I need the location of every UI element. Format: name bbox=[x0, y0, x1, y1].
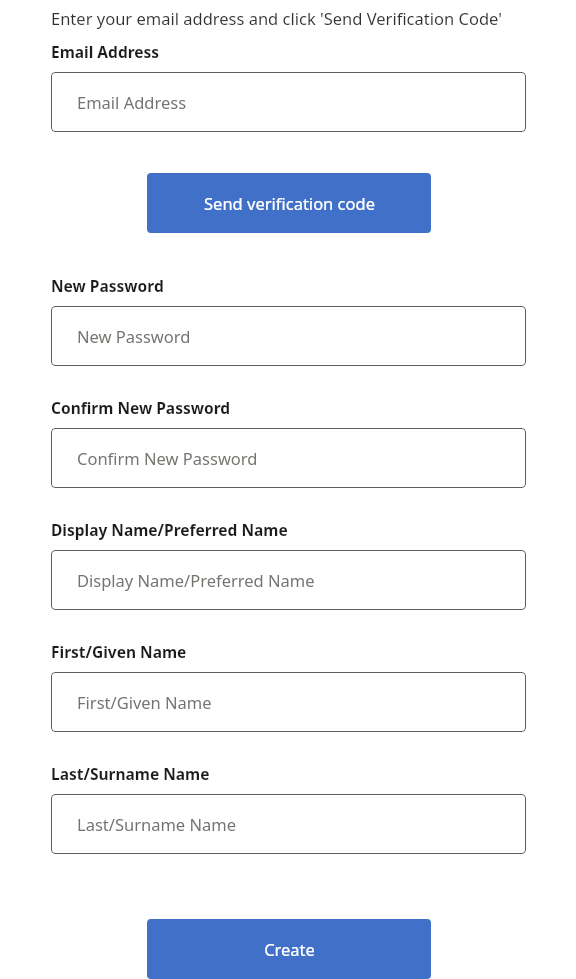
staticText: Last/Surname Name bbox=[51, 763, 210, 784]
button[interactable]: Display Name/Preferred Name bbox=[51, 550, 526, 610]
staticText: Email Address bbox=[77, 91, 187, 113]
button[interactable]: Create bbox=[147, 919, 431, 979]
button[interactable]: First/Given Name bbox=[51, 672, 526, 732]
button[interactable]: Confirm New Password bbox=[51, 428, 526, 488]
staticText: Display Name/Preferred Name bbox=[77, 569, 315, 591]
button[interactable]: New Password bbox=[51, 306, 526, 366]
staticText: Confirm New Password bbox=[51, 397, 231, 418]
staticText: Last/Surname Name bbox=[77, 813, 236, 835]
button[interactable]: Email Address bbox=[51, 72, 526, 132]
staticText: Confirm New Password bbox=[77, 447, 258, 469]
staticText: Email Address bbox=[51, 41, 160, 62]
staticText: Send verification code bbox=[204, 192, 375, 214]
staticText: New Password bbox=[51, 275, 164, 296]
staticText: Display Name/Preferred Name bbox=[51, 519, 288, 540]
staticText: Create bbox=[264, 938, 315, 960]
staticText: First/Given Name bbox=[51, 641, 187, 662]
staticText: New Password bbox=[77, 325, 191, 347]
button[interactable]: Last/Surname Name bbox=[51, 794, 526, 854]
staticText: Enter your email address and click 'Send… bbox=[51, 7, 502, 29]
button[interactable]: Send verification code bbox=[147, 173, 431, 233]
staticText: First/Given Name bbox=[77, 691, 212, 713]
